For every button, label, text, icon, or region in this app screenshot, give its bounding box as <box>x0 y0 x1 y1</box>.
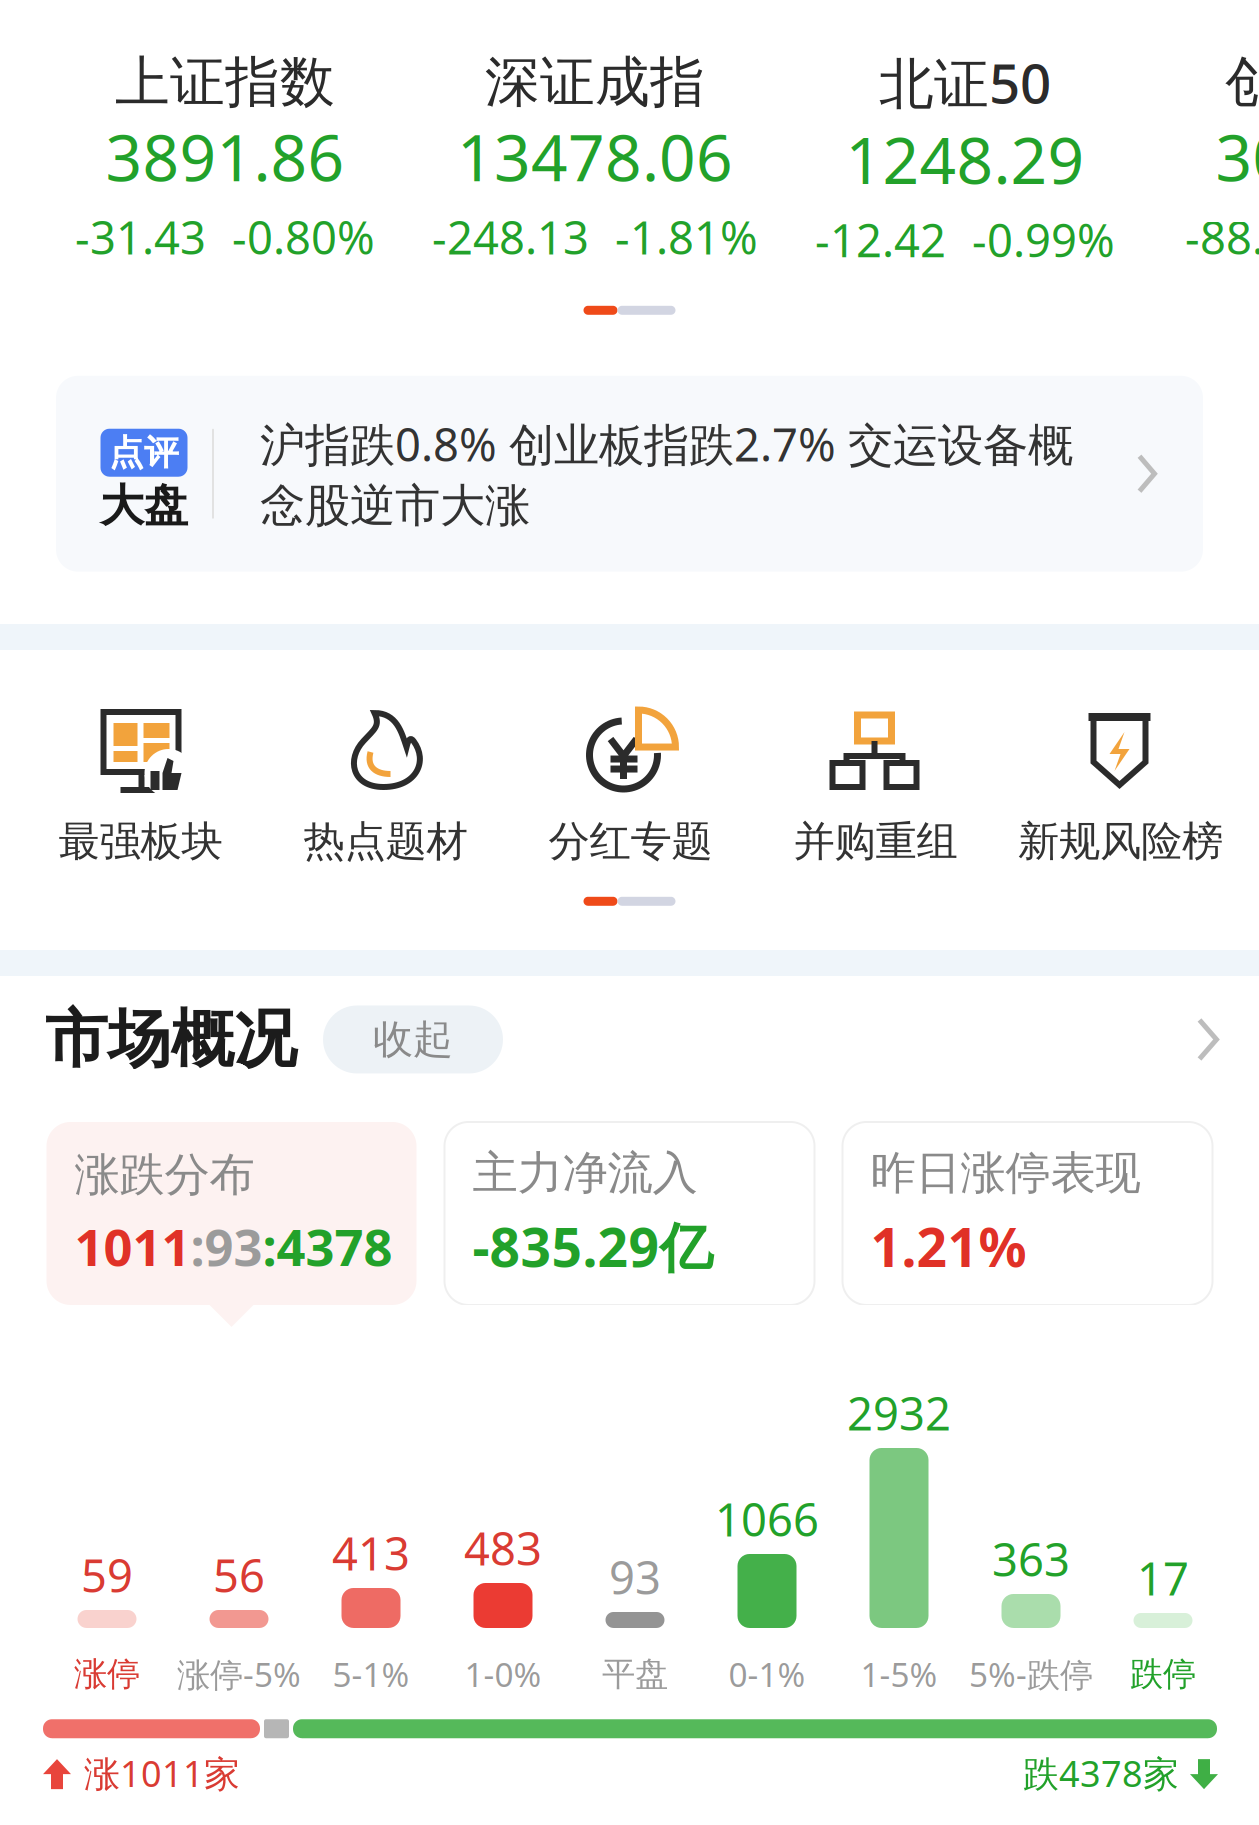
staticText: 413 <box>332 1523 410 1583</box>
staticText: 沪指跌0.8% 创业板指跌2.7% 交运设备概 <box>260 414 1073 474</box>
staticText: -0.80% <box>232 207 375 267</box>
staticText: -12.42 <box>815 210 946 270</box>
staticText: 大盘 <box>100 479 188 533</box>
staticText: 深证成指 <box>485 49 705 116</box>
staticText: 3021.78 <box>1215 114 1259 199</box>
staticText: 2932 <box>847 1383 951 1443</box>
staticText: 5%-跌停 <box>969 1652 1093 1696</box>
button[interactable]: More <box>1197 1017 1219 1061</box>
staticText: 3891.86 <box>105 114 344 199</box>
button[interactable]: 主力净流入 <box>444 1122 814 1327</box>
staticText: 收起 <box>373 1015 453 1064</box>
button[interactable]: 涨跌分布 <box>46 1122 416 1327</box>
staticText: 上证指数 <box>115 49 335 116</box>
button[interactable]: 上证指数 <box>40 49 410 267</box>
staticText: 363 <box>992 1529 1070 1589</box>
button[interactable]: 最强板块 <box>18 706 263 867</box>
button[interactable]: 热点题材 <box>263 706 508 867</box>
staticText: -0.99% <box>972 210 1115 270</box>
staticText: 1.21% <box>870 1211 1026 1282</box>
staticText: 13478.06 <box>457 114 733 199</box>
staticText: -835.29亿 <box>472 1211 712 1282</box>
staticText: -248.13 <box>432 207 589 267</box>
staticText: 跌停 <box>1130 1654 1196 1694</box>
staticText: 1248.29 <box>845 117 1084 202</box>
button[interactable]: 昨日涨停表现 <box>842 1122 1212 1327</box>
staticText: 1011 <box>74 1213 190 1280</box>
staticText: 涨停 <box>74 1654 140 1694</box>
staticText: 17 <box>1137 1548 1189 1608</box>
staticText: 分红专题 <box>548 816 712 867</box>
staticText: 北证50 <box>879 46 1051 119</box>
staticText: 创业板指 <box>1225 49 1259 116</box>
staticText: -1.81% <box>615 207 758 267</box>
staticText: 最强板块 <box>58 816 222 867</box>
staticText: 涨1011家 <box>84 1749 240 1797</box>
staticText: 市场概况 <box>45 1001 297 1078</box>
staticText: 1-5% <box>860 1652 937 1696</box>
button[interactable]: 新规风险榜 <box>998 706 1243 867</box>
staticText: -31.43 <box>75 207 206 267</box>
staticText: 483 <box>464 1518 542 1578</box>
staticText: 56 <box>213 1545 265 1605</box>
staticText: 昨日涨停表现 <box>870 1145 1140 1201</box>
staticText: 涨跌分布 <box>74 1147 254 1203</box>
staticText: 主力净流入 <box>472 1145 697 1201</box>
button[interactable]: 创业板指 <box>1150 49 1259 267</box>
staticText: 热点题材 <box>303 816 467 867</box>
staticText: 点评 <box>109 431 179 474</box>
button[interactable]: 北证50 <box>780 46 1150 270</box>
staticText: 念股逆市大涨 <box>260 478 530 534</box>
button[interactable]: 并购重组 <box>753 706 998 867</box>
staticText: 5-1% <box>332 1652 409 1696</box>
button[interactable]: 深证成指 <box>410 49 780 267</box>
staticText: 1-0% <box>464 1652 541 1696</box>
staticText: 93 <box>609 1547 661 1607</box>
staticText: : <box>190 1213 204 1280</box>
button[interactable]: 点评 <box>56 376 1203 572</box>
staticText: 59 <box>81 1545 133 1605</box>
staticText: 4378 <box>276 1213 392 1280</box>
staticText: 跌4378家 <box>1023 1749 1179 1797</box>
staticText: : <box>262 1213 276 1280</box>
staticText: 0-1% <box>728 1652 805 1696</box>
staticText: 平盘 <box>602 1654 668 1694</box>
button[interactable]: 收起 <box>323 1005 503 1073</box>
staticText: 新规风险榜 <box>1018 816 1223 867</box>
button[interactable]: 分红专题 <box>508 706 753 867</box>
staticText: 1066 <box>715 1489 819 1549</box>
staticText: -88.26 <box>1185 207 1259 267</box>
staticText: 涨停-5% <box>177 1652 301 1696</box>
staticText: 93 <box>204 1213 262 1280</box>
staticText: 并购重组 <box>793 816 957 867</box>
